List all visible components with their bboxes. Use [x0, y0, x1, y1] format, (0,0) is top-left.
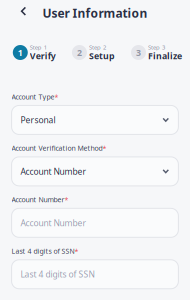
staticText: Account Type: [12, 92, 55, 101]
staticText: Step 3: [148, 43, 165, 51]
button[interactable]: Account Number: [12, 157, 178, 186]
button[interactable]: Back: [12, 0, 34, 22]
staticText: Finalize: [148, 50, 182, 62]
button[interactable]: Personal: [12, 105, 178, 134]
staticText: 3: [136, 46, 141, 58]
staticText: Account Number: [20, 217, 86, 229]
staticText: 1: [18, 46, 23, 58]
staticText: Step 2: [89, 43, 106, 51]
staticText: User Information: [42, 5, 147, 21]
staticText: *: [55, 92, 59, 101]
staticText: Account Verification Method: [12, 143, 103, 153]
staticText: Last 4 digits of SSN: [20, 268, 94, 280]
staticText: *: [103, 143, 107, 153]
staticText: Last 4 digits of SSN: [12, 246, 75, 256]
staticText: Account Number: [20, 166, 86, 177]
staticText: Verify: [30, 50, 56, 62]
staticText: *: [75, 246, 79, 256]
staticText: Step 1: [30, 43, 47, 51]
button[interactable]: Account Number: [12, 208, 178, 237]
staticText: Setup: [89, 50, 115, 62]
staticText: 2: [77, 46, 82, 58]
staticText: Account Number: [12, 195, 65, 204]
staticText: *: [65, 195, 69, 204]
button[interactable]: Last 4 digits of SSN: [12, 260, 178, 289]
staticText: Personal: [20, 114, 55, 126]
